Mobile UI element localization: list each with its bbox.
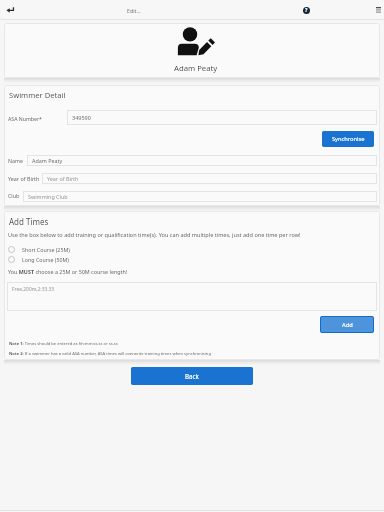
staticText: ? (305, 7, 308, 14)
button[interactable]: Back (131, 367, 253, 385)
staticText: 349590 (72, 114, 91, 121)
staticText: Add Times (9, 216, 49, 227)
staticText: Use the box below to add training or qua… (8, 231, 301, 239)
staticText: Swimmer Detail (9, 90, 66, 100)
staticText: Free,200m,2:33.33 (12, 286, 55, 293)
button[interactable]: Synchronise (322, 131, 374, 147)
button[interactable]: Swimming Club (23, 191, 377, 202)
staticText: Adam Peaty (32, 157, 63, 164)
staticText: Year of Birth (8, 175, 40, 182)
button[interactable]: Menu (370, 1, 384, 17)
staticText: ASA Number* (8, 115, 42, 122)
button[interactable]: Free,200m,2:33.33 (7, 282, 377, 311)
button[interactable]: Year of Birth (42, 173, 377, 184)
button[interactable]: Short Course (25M) (4, 244, 380, 255)
staticText: Synchronise (332, 135, 365, 143)
button[interactable]: Edit swimmer (173, 26, 217, 58)
staticText: Swimming Club (28, 193, 68, 200)
staticText: Year of Birth (47, 175, 79, 182)
button[interactable]: Add (320, 316, 374, 333)
staticText: Club (8, 192, 20, 199)
button[interactable]: Back (2, 2, 18, 18)
button[interactable]: Help (303, 7, 310, 14)
button[interactable]: 349590 (67, 110, 377, 125)
staticText: Short Course (25M) (22, 246, 70, 253)
staticText: You MUST choose a 25M or 50M course leng… (8, 268, 128, 275)
button[interactable]: Long Course (50M) (4, 254, 380, 265)
staticText: Edit... (127, 7, 141, 14)
button[interactable]: Adam Peaty (27, 155, 377, 166)
staticText: Note 2: If a swimmer has a valid ASA num… (9, 351, 211, 357)
staticText: Back (185, 372, 199, 380)
staticText: Add (342, 321, 353, 329)
staticText: Adam Peaty (174, 63, 218, 73)
staticText: Note 1: Times should be entered as hh:mm… (9, 341, 118, 347)
staticText: Long Course (50M) (22, 256, 69, 263)
staticText: Name (8, 157, 23, 164)
